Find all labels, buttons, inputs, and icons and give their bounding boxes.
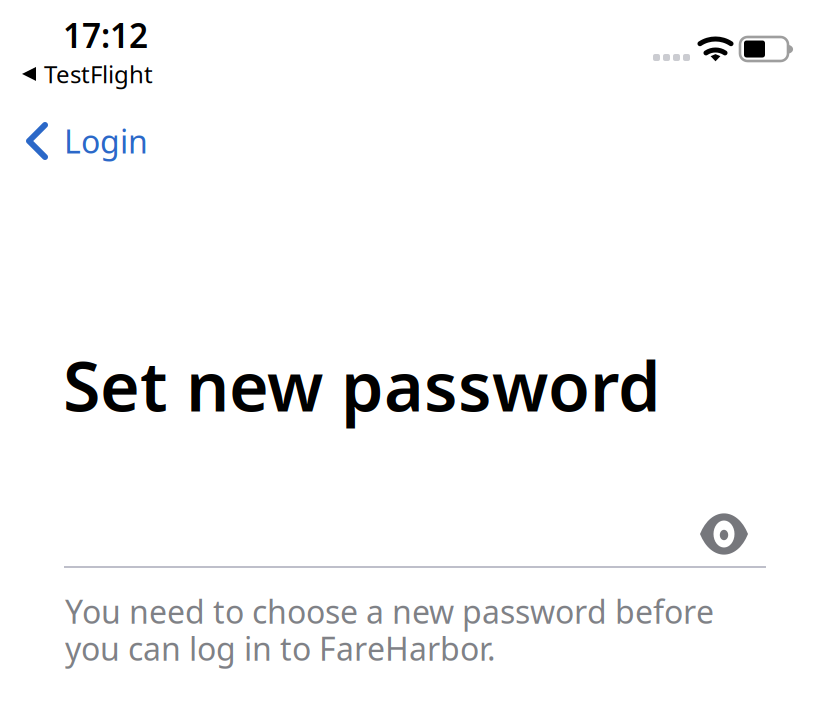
staticText: 17:12 (63, 13, 148, 57)
button[interactable]: Login (0, 110, 828, 172)
staticText: You need to choose a new password before (65, 590, 714, 632)
staticText: you can log in to FareHarbor. (65, 627, 496, 669)
staticText: Login (64, 120, 148, 162)
staticText: Set new password (63, 340, 661, 430)
button[interactable]: Back to TestFlight (18, 51, 153, 97)
staticText: TestFlight (44, 58, 153, 90)
button[interactable]: Show password (694, 508, 754, 560)
